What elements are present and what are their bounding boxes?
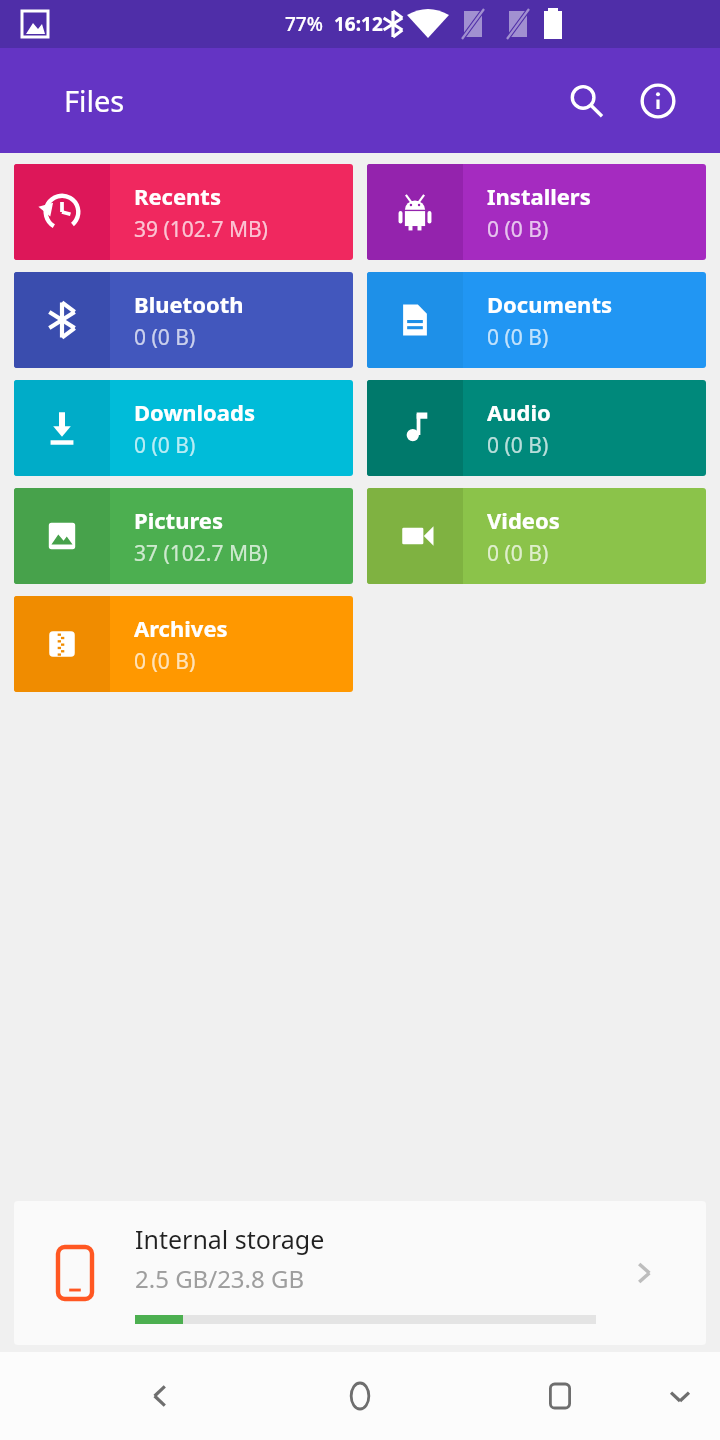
staticText: 0 (0 B) [134, 431, 196, 460]
staticText: 39 (102.7 MB) [134, 215, 268, 244]
button[interactable]: Installers [367, 164, 706, 260]
staticText: 2.5 GB/23.8 GB [135, 1262, 305, 1295]
staticText: Files [64, 81, 125, 120]
button[interactable]: Hide [652, 1368, 708, 1424]
staticText: 0 (0 B) [487, 431, 549, 460]
button[interactable]: Internal storage [14, 1201, 706, 1345]
staticText: Pictures [134, 505, 224, 535]
button[interactable]: Downloads [14, 380, 353, 476]
button[interactable]: Bluetooth [14, 272, 353, 368]
staticText: Installers [487, 181, 591, 211]
staticText: 0 (0 B) [134, 323, 196, 352]
staticText: Recents [134, 181, 221, 211]
button[interactable]: Documents [367, 272, 706, 368]
button[interactable]: Archives [14, 596, 353, 692]
button[interactable]: Recents [14, 164, 353, 260]
button[interactable]: Videos [367, 488, 706, 584]
staticText: 0 (0 B) [487, 323, 549, 352]
button[interactable]: Open internal storage [622, 1251, 666, 1295]
button[interactable]: Back [130, 1366, 190, 1426]
staticText: 37 (102.7 MB) [134, 539, 268, 568]
staticText: Documents [487, 289, 612, 319]
button[interactable]: Audio [367, 380, 706, 476]
button[interactable]: Pictures [14, 488, 353, 584]
staticText: 0 (0 B) [487, 539, 549, 568]
staticText: Downloads [134, 397, 255, 427]
staticText: Audio [487, 397, 551, 427]
staticText: Bluetooth [134, 289, 244, 319]
staticText: 0 (0 B) [487, 215, 549, 244]
button[interactable]: About [630, 73, 686, 129]
staticText: Videos [487, 505, 560, 535]
button[interactable]: Home [330, 1366, 390, 1426]
button[interactable]: Search [558, 73, 614, 129]
staticText: 77% [285, 11, 323, 37]
button[interactable]: Recent apps [530, 1366, 590, 1426]
staticText: Archives [134, 613, 228, 643]
staticText: 16:12 [334, 11, 383, 37]
staticText: Internal storage [135, 1222, 325, 1256]
staticText: 0 (0 B) [134, 647, 196, 676]
